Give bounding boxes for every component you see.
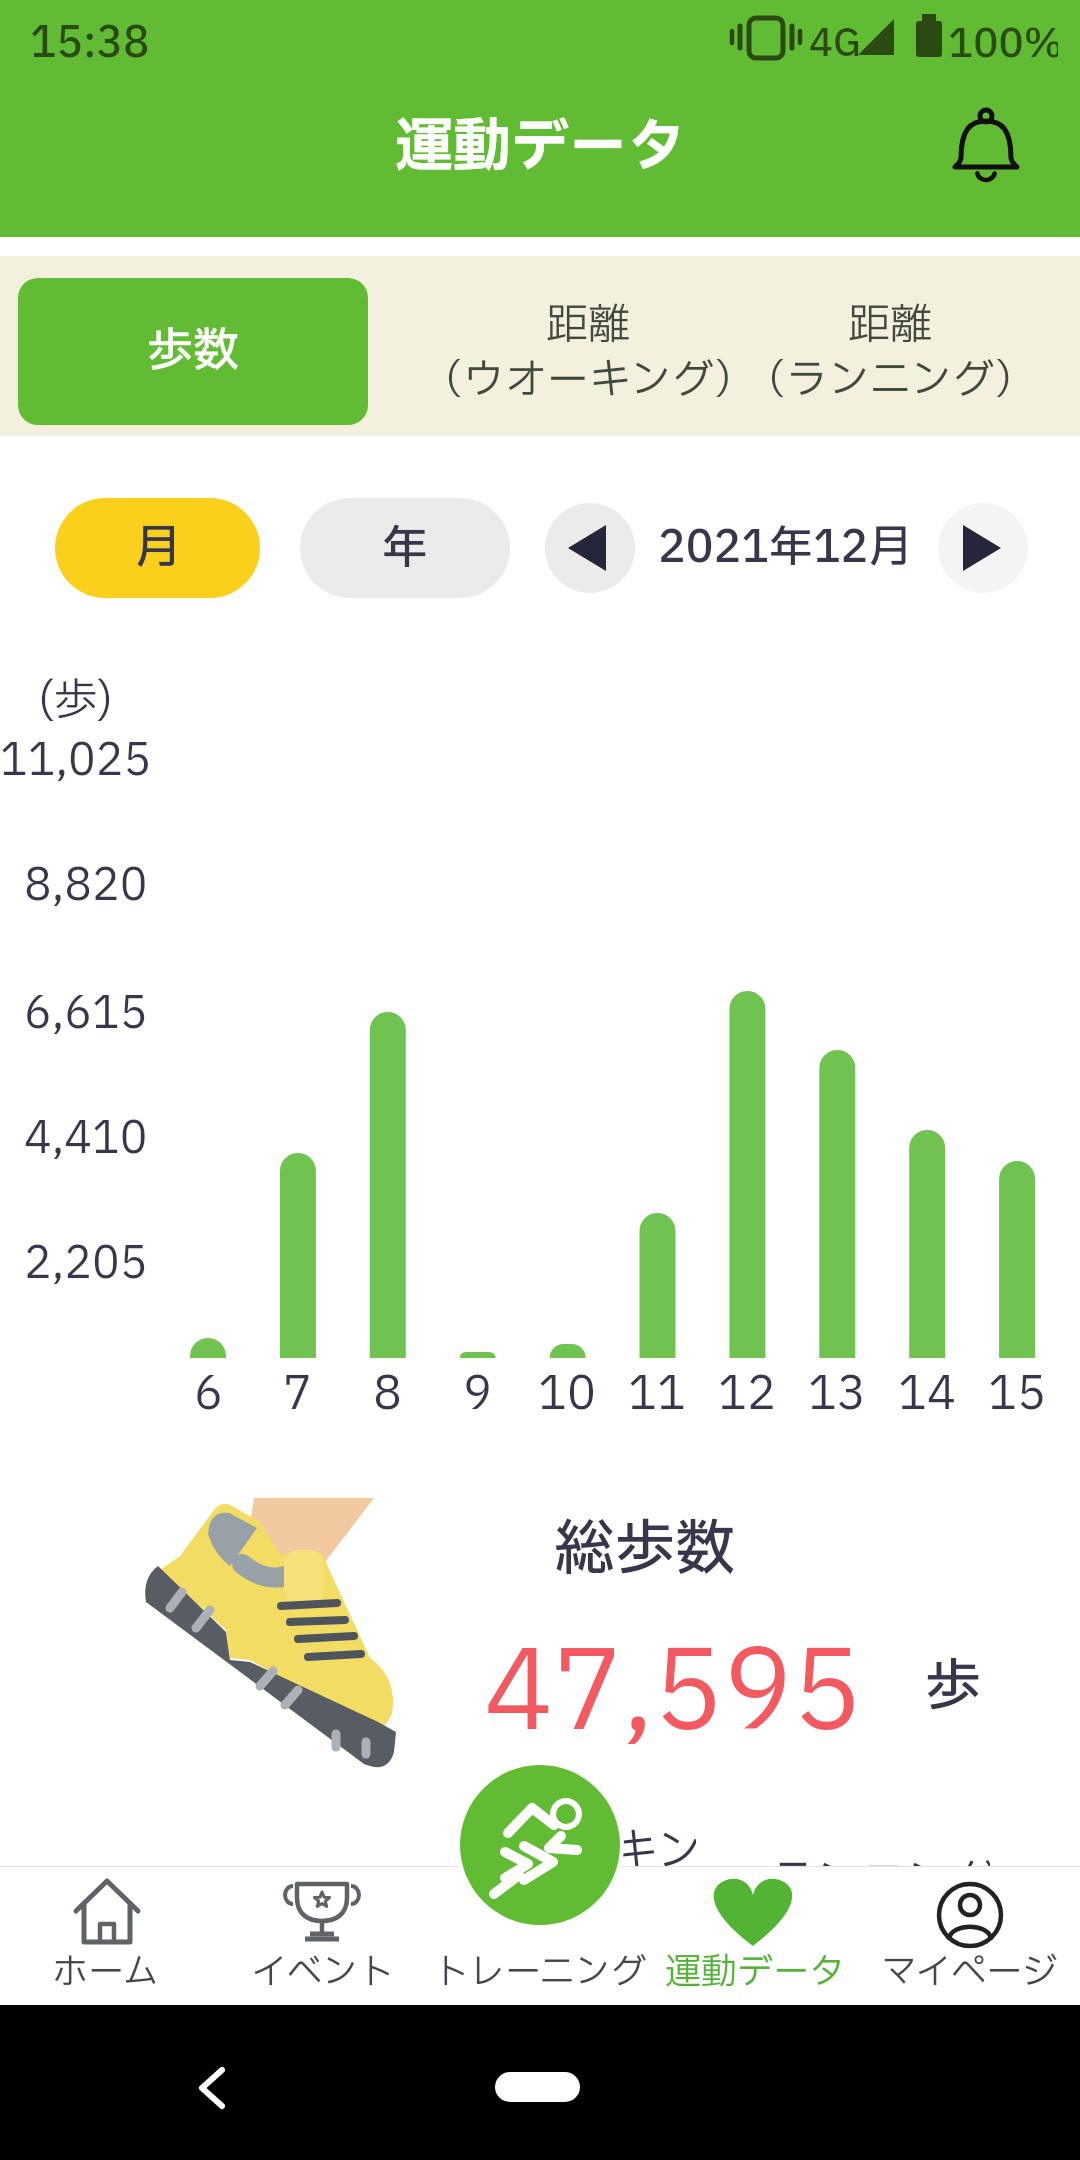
staticText: 15:38 <box>30 12 150 64</box>
staticText: イベント <box>251 1946 395 1994</box>
staticText: 13 <box>808 1360 866 1414</box>
staticText: 10 <box>538 1360 596 1414</box>
staticText: 年 <box>382 514 428 583</box>
staticText: 運動データ <box>665 1946 846 1994</box>
staticText: 9 <box>463 1360 492 1414</box>
staticText: 7 <box>283 1360 312 1414</box>
staticText: ホーム <box>52 1946 159 1994</box>
staticText: 47,595 <box>484 1612 862 1758</box>
button[interactable]: 歩数 <box>18 278 368 425</box>
staticText: 12 <box>718 1360 776 1414</box>
button[interactable] <box>430 1868 650 2003</box>
staticText: トレーニング <box>433 1946 647 1994</box>
button[interactable]: 年 <box>300 498 510 598</box>
button[interactable] <box>545 503 635 593</box>
staticText: 距離 <box>546 294 631 348</box>
button[interactable] <box>790 260 1080 432</box>
button[interactable] <box>660 1868 850 2003</box>
button[interactable] <box>938 99 1034 195</box>
staticText: 距離 <box>848 294 933 348</box>
staticText: 15 <box>988 1360 1046 1414</box>
staticText: 歩数 <box>147 317 239 386</box>
button[interactable] <box>880 1868 1060 2003</box>
staticText: 8 <box>373 1360 402 1414</box>
staticText: 100% <box>948 15 1058 65</box>
staticText: 14 <box>898 1360 956 1414</box>
button[interactable] <box>460 1765 620 1925</box>
staticText: 2021年12月 <box>658 515 913 581</box>
staticText: ランニング <box>770 1848 990 1908</box>
button[interactable] <box>240 1868 405 2003</box>
staticText: （ウオーキング） <box>421 349 756 403</box>
button[interactable] <box>380 260 780 432</box>
button[interactable]: 月 <box>55 498 260 598</box>
button[interactable] <box>30 1868 180 2003</box>
staticText: 6 <box>194 1360 223 1414</box>
staticText: 運動データ <box>395 105 686 190</box>
staticText: 8,820 <box>24 853 148 907</box>
staticText: キン <box>612 1818 696 1872</box>
staticText: (歩) <box>38 668 113 722</box>
staticText: 4G <box>809 16 861 64</box>
staticText: マイページ <box>881 1946 1059 1994</box>
staticText: 歩 <box>925 1646 981 1730</box>
staticText: 11 <box>628 1360 686 1414</box>
staticText: 4,410 <box>24 1106 148 1160</box>
staticText: 6,615 <box>24 981 148 1035</box>
staticText: 総歩数 <box>555 1505 735 1585</box>
staticText: 2,205 <box>24 1231 148 1285</box>
staticText: 11,025 <box>0 728 148 782</box>
staticText: 月 <box>135 514 181 583</box>
staticText: （ランニング） <box>744 349 1037 403</box>
button[interactable] <box>938 503 1028 593</box>
